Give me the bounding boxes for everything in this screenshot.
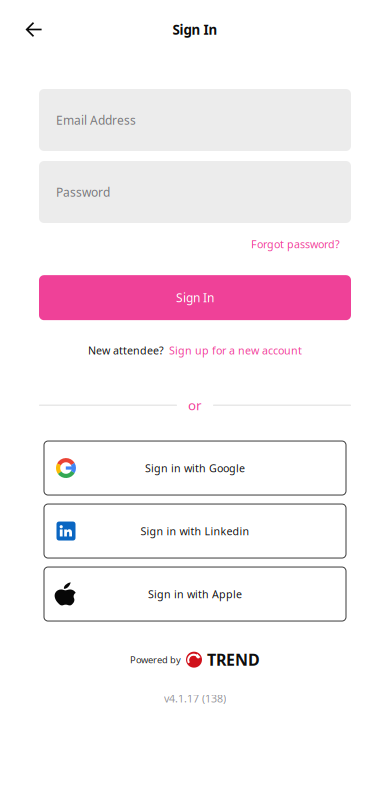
button[interactable]: Sign up for a new account xyxy=(169,343,302,357)
staticText: or xyxy=(188,396,202,414)
staticText: Email Address xyxy=(56,112,136,128)
staticText: TREND xyxy=(207,649,260,670)
staticText: Sign In xyxy=(172,21,217,38)
button[interactable]: Forgot password? xyxy=(251,237,340,251)
staticText: Sign in with Google xyxy=(145,461,245,475)
button[interactable]: Sign in with Apple xyxy=(44,567,346,621)
button[interactable]: Email Address xyxy=(39,89,351,151)
staticText: Sign in with Apple xyxy=(148,587,242,601)
button[interactable]: Sign In xyxy=(39,275,351,320)
staticText: Sign in with Linkedin xyxy=(140,524,249,538)
button[interactable]: Back xyxy=(13,8,55,50)
staticText: v4.1.17 (138) xyxy=(164,691,226,705)
button[interactable]: Sign in with Google xyxy=(44,441,346,495)
staticText: Sign In xyxy=(176,290,214,306)
staticText: Sign up for a new account xyxy=(169,343,302,357)
staticText: Password xyxy=(56,184,110,200)
staticText: New attendee? xyxy=(88,343,164,357)
staticText: Forgot password? xyxy=(251,237,340,251)
button[interactable]: Password xyxy=(39,161,351,223)
button[interactable]: Sign in with Linkedin xyxy=(44,504,346,558)
staticText: Powered by xyxy=(130,653,181,666)
